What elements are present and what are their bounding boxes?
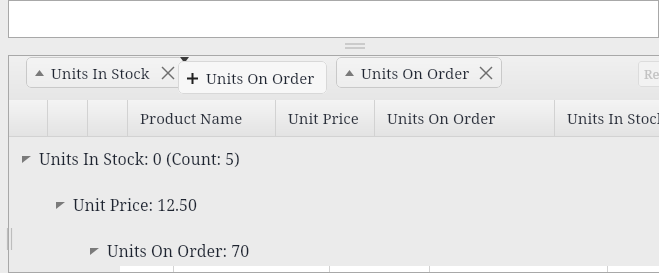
button[interactable]: Units In Stock [26, 57, 184, 88]
other: Collapse group [56, 202, 65, 209]
button[interactable]: Units In Stock [555, 100, 659, 136]
staticText: Units In Stock [567, 108, 659, 128]
button[interactable] [8, 100, 48, 136]
staticText: Reset [644, 65, 659, 83]
button[interactable]: Reset [638, 61, 659, 87]
button[interactable]: Units On Order [375, 100, 555, 136]
staticText: Units On Order: 70 [107, 240, 250, 262]
staticText: Units In Stock: 0 (Count: 5) [39, 148, 240, 170]
button[interactable]: Collapse group [56, 192, 197, 218]
button[interactable]: Product Name [128, 100, 276, 136]
button[interactable]: Remove grouping Units On Order [480, 67, 492, 79]
button[interactable]: Add grouping [178, 61, 327, 94]
button[interactable]: Unit Price [276, 100, 375, 136]
staticText: Units On Order [387, 108, 496, 128]
staticText: Product Name [140, 108, 243, 128]
button[interactable]: Remove grouping Units In Stock [162, 67, 174, 79]
button[interactable]: Collapse group [90, 238, 250, 264]
button[interactable] [88, 100, 128, 136]
button[interactable]: Resize panels [345, 43, 365, 50]
staticText: Units On Order [206, 68, 315, 88]
staticText: Unit Price [288, 108, 359, 128]
button[interactable] [48, 100, 88, 136]
staticText: Units In Stock [51, 63, 150, 83]
other: Add grouping [187, 73, 198, 84]
button[interactable]: Units On Order [336, 57, 502, 88]
other: Collapse group [90, 248, 99, 255]
button[interactable]: Resize panel width [6, 228, 13, 250]
button[interactable]: Collapse group [22, 146, 240, 172]
staticText: Unit Price: 12.50 [73, 194, 197, 216]
other: Collapse group [22, 156, 31, 163]
staticText: Units On Order [361, 63, 470, 83]
